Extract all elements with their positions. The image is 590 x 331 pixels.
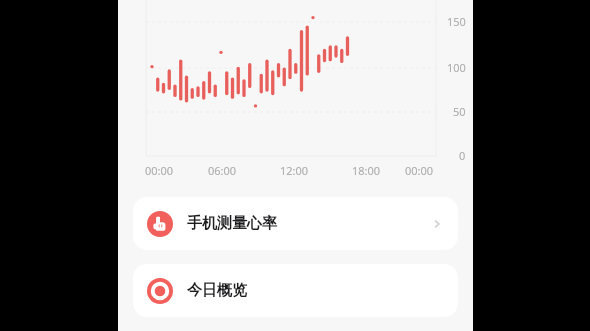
staticText: 12:00	[280, 163, 309, 178]
other: Today overview	[147, 278, 173, 304]
staticText: 150	[447, 14, 466, 29]
staticText: 00:00	[145, 163, 174, 178]
staticText: 18:00	[352, 163, 381, 178]
button[interactable]: Measure heart rate with phone	[133, 197, 458, 250]
button[interactable]: Today overview	[133, 264, 458, 317]
staticText: 0	[459, 148, 466, 163]
staticText: 今日概览	[187, 281, 247, 300]
staticText: 手机测量心率	[187, 214, 277, 233]
other: Measure heart rate with phone	[147, 211, 173, 237]
staticText: 100	[447, 60, 466, 75]
staticText: 06:00	[208, 163, 237, 178]
staticText: 50	[453, 104, 466, 119]
staticText: 00:00	[405, 163, 434, 178]
